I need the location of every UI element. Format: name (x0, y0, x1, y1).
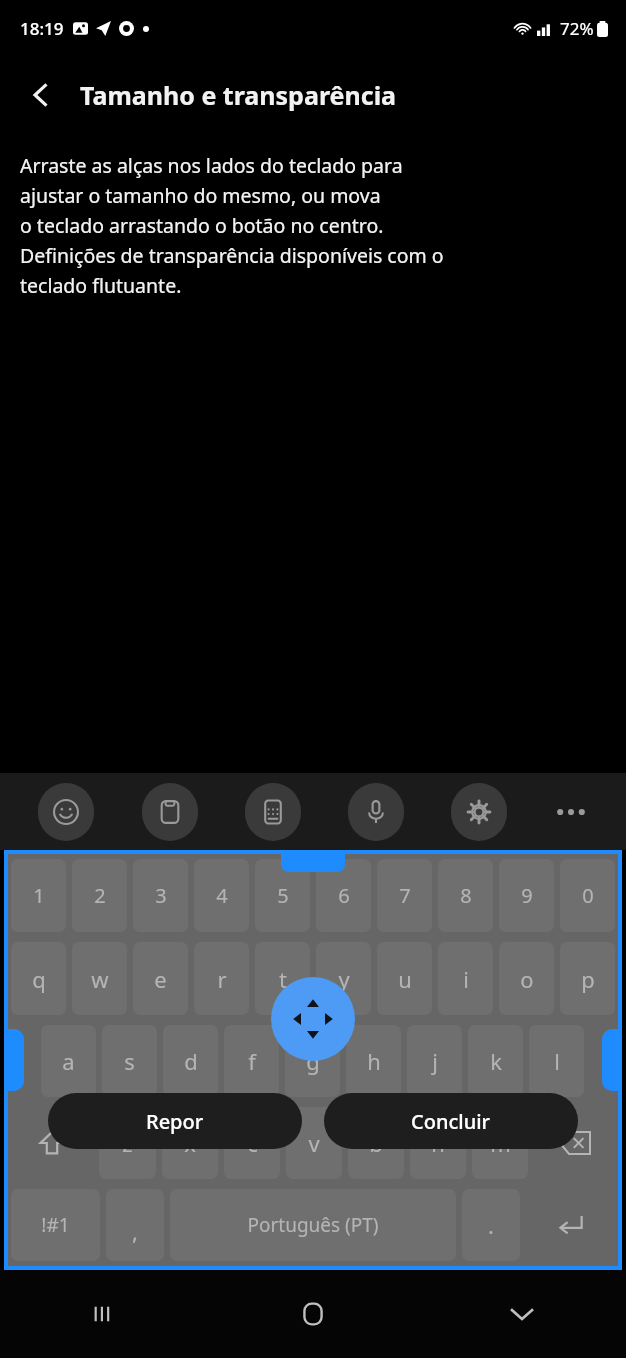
staticText: k (490, 1046, 502, 1076)
staticText: q (32, 964, 46, 994)
button[interactable]: Enter (526, 1189, 615, 1261)
button[interactable]: f (224, 1025, 279, 1097)
button[interactable]: 9 (499, 859, 554, 932)
button[interactable]: c (224, 1107, 280, 1179)
button[interactable]: Resize keyboard right (602, 1029, 622, 1091)
staticText: d (184, 1046, 198, 1076)
button[interactable]: h (346, 1025, 401, 1097)
button[interactable]: g (285, 1025, 340, 1097)
button[interactable]: Português (PT) (170, 1189, 456, 1261)
staticText: Tamanho e transparência (80, 78, 397, 112)
button[interactable]: t (255, 942, 310, 1015)
staticText: 8 (460, 882, 472, 909)
button[interactable]: e (133, 942, 188, 1015)
button[interactable]: r (194, 942, 249, 1015)
button[interactable]: s (102, 1025, 157, 1097)
button[interactable]: Hide keyboard (417, 1270, 626, 1358)
button[interactable]: Back (14, 68, 68, 122)
staticText: a (62, 1046, 75, 1076)
staticText: 9 (521, 882, 533, 909)
button[interactable]: 2 (72, 859, 127, 932)
button[interactable]: u (377, 942, 432, 1015)
button[interactable]: , (106, 1189, 164, 1261)
button[interactable]: Resize keyboard height (281, 850, 345, 872)
staticText: Concluir (411, 1108, 491, 1135)
button[interactable]: x (162, 1107, 218, 1179)
staticText: z (122, 1128, 133, 1158)
staticText: u (398, 964, 412, 994)
staticText: , (132, 1216, 138, 1246)
button[interactable]: a (41, 1025, 96, 1097)
button[interactable]: Move keyboard (271, 977, 355, 1061)
button[interactable]: !#1 (11, 1189, 100, 1261)
button[interactable]: Concluir (324, 1093, 578, 1149)
button[interactable]: 0 (560, 859, 615, 932)
button[interactable]: More options (530, 773, 612, 850)
staticText: s (124, 1046, 135, 1076)
staticText: 4 (216, 882, 228, 909)
button[interactable]: Shift (11, 1107, 93, 1179)
button[interactable]: i (438, 942, 493, 1015)
button[interactable]: l (529, 1025, 584, 1097)
staticText: p (581, 964, 595, 994)
button[interactable]: Keyboard modes (221, 773, 324, 850)
button[interactable]: Backspace (534, 1107, 615, 1179)
staticText: i (463, 964, 469, 994)
button[interactable]: 7 (377, 859, 432, 932)
staticText: n (431, 1128, 445, 1158)
button[interactable]: Emoji (14, 773, 118, 850)
button[interactable]: Recent apps (0, 1270, 208, 1358)
button[interactable]: 5 (255, 859, 310, 932)
staticText: 5 (277, 882, 289, 909)
button[interactable]: k (468, 1025, 523, 1097)
staticText: 7 (399, 882, 411, 909)
staticText: 1 (33, 882, 45, 909)
staticText: Arraste as alças nos lados do teclado pa… (20, 152, 444, 298)
staticText: m (490, 1128, 511, 1158)
button[interactable]: w (72, 942, 127, 1015)
button[interactable]: 4 (194, 859, 249, 932)
button[interactable]: v (286, 1107, 342, 1179)
staticText: . (488, 1210, 494, 1240)
staticText: !#1 (41, 1212, 70, 1238)
button[interactable]: m (472, 1107, 528, 1179)
button[interactable]: y (316, 942, 371, 1015)
staticText: 18:19 (20, 17, 64, 40)
staticText: c (247, 1128, 258, 1158)
button[interactable]: n (410, 1107, 466, 1179)
staticText: o (520, 964, 534, 994)
button[interactable]: 3 (133, 859, 188, 932)
button[interactable]: Settings (427, 773, 530, 850)
staticText: w (91, 964, 109, 994)
button[interactable]: Clipboard (118, 773, 221, 850)
staticText: 72% (560, 17, 594, 40)
button[interactable]: b (348, 1107, 404, 1179)
button[interactable]: 8 (438, 859, 493, 932)
button[interactable]: 1 (11, 859, 66, 932)
staticText: x (184, 1128, 196, 1158)
button[interactable]: Resize keyboard left (4, 1029, 24, 1091)
staticText: 2 (94, 882, 106, 909)
button[interactable]: Voice input (324, 773, 427, 850)
button[interactable]: z (99, 1107, 156, 1179)
button[interactable]: d (163, 1025, 218, 1097)
staticText: e (154, 964, 167, 994)
button[interactable]: j (407, 1025, 462, 1097)
button[interactable]: Repor (48, 1093, 302, 1149)
staticText: t (279, 964, 287, 994)
staticText: j (432, 1046, 438, 1076)
staticText: l (554, 1046, 560, 1076)
staticText: Português (PT) (247, 1212, 379, 1238)
staticText: h (367, 1046, 381, 1076)
staticText: v (308, 1128, 320, 1158)
button[interactable]: p (560, 942, 615, 1015)
button[interactable]: q (11, 942, 66, 1015)
button[interactable]: o (499, 942, 554, 1015)
button[interactable]: Home (208, 1270, 417, 1358)
staticText: g (306, 1046, 320, 1076)
button[interactable]: 6 (316, 859, 371, 932)
staticText: f (248, 1046, 256, 1076)
staticText: 3 (155, 882, 167, 909)
staticText: y (338, 964, 350, 994)
